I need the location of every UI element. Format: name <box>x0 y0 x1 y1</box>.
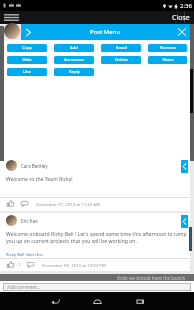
staticText: Share <box>162 57 174 63</box>
button[interactable]: Expand post <box>21 24 190 40</box>
staticText: Copy <box>22 45 32 51</box>
button[interactable]: Like <box>7 68 47 76</box>
staticText: 2:36 <box>180 2 192 10</box>
button[interactable]: Close menu <box>176 26 188 38</box>
button[interactable]: Open post <box>181 215 188 228</box>
button[interactable]: Like <box>6 260 15 269</box>
staticText: Add comment... <box>7 284 41 290</box>
staticText: Ricky Bell likes this. <box>6 252 44 258</box>
button[interactable]: Share <box>148 56 187 64</box>
staticText: Add <box>70 45 78 51</box>
staticText: December 08, 2013 at 12:02 PM <box>42 262 106 268</box>
button[interactable]: Email <box>101 44 141 52</box>
staticText: Hide <box>22 57 32 63</box>
button[interactable]: Like <box>6 199 15 208</box>
staticText: Announce <box>64 57 84 63</box>
button[interactable]: Open post <box>181 160 188 173</box>
staticText: Remove <box>160 45 176 51</box>
button[interactable]: Expand post <box>23 27 34 38</box>
staticText: Email <box>116 45 127 51</box>
staticText: Reply <box>69 69 80 75</box>
staticText: Welcome to the Team Ricky! <box>6 176 187 183</box>
button[interactable]: Reply <box>54 68 94 76</box>
button[interactable]: Add <box>54 44 94 52</box>
button[interactable]: Navigation menu <box>4 13 19 22</box>
button[interactable]: Home <box>90 294 104 308</box>
button[interactable]: Remove <box>148 44 187 52</box>
button[interactable]: Copy <box>7 44 47 52</box>
button[interactable]: Comment <box>20 199 29 208</box>
staticText: Post Menu <box>90 28 121 36</box>
staticText: Welcome onboard Ricky Bell ! Let's spend… <box>6 231 187 245</box>
staticText: Cara Bentley <box>21 163 48 169</box>
staticText: · 1 <box>15 262 21 268</box>
button[interactable]: Delete <box>101 56 141 64</box>
button[interactable]: Recent apps <box>133 294 147 308</box>
staticText: Like <box>23 69 31 75</box>
staticText: Close <box>172 13 190 22</box>
staticText: think we should have the launch <box>117 275 186 281</box>
button[interactable]: Back <box>48 294 62 308</box>
button[interactable]: Comment <box>26 260 35 269</box>
button[interactable]: Hide <box>7 56 47 64</box>
button[interactable]: Close <box>166 11 194 24</box>
button[interactable]: Add comment... <box>4 284 190 290</box>
staticText: Delete <box>115 57 128 63</box>
button[interactable]: Announce <box>54 56 94 64</box>
staticText: Eric Kee <box>21 218 38 224</box>
staticText: December 07, 2013 at 11:33 AM <box>36 201 100 207</box>
